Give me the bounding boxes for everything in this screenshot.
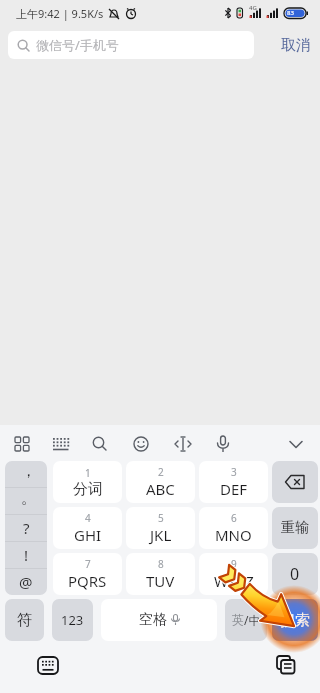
button[interactable]: 6 [199, 507, 268, 549]
button[interactable]: 7 [53, 553, 122, 595]
staticText: 8 [158, 557, 164, 571]
staticText: 2 [158, 465, 164, 479]
staticText: 6 [231, 511, 237, 525]
staticText: ABC [146, 479, 175, 499]
button[interactable]: 3 [199, 461, 268, 503]
staticText: TUV [146, 571, 175, 591]
staticText: 1 [85, 466, 91, 480]
button[interactable]: 8 [126, 553, 195, 595]
button[interactable]: 1 [53, 461, 122, 503]
staticText: 搜索 [280, 611, 310, 630]
button[interactable] [0, 425, 45, 461]
button[interactable]: 9 [199, 553, 268, 595]
staticText: GHI [74, 525, 102, 545]
button[interactable] [45, 425, 90, 461]
staticText: 4G [249, 4, 257, 12]
button[interactable]: 搜索 [272, 599, 318, 641]
button[interactable] [272, 461, 318, 503]
staticText: 4 [85, 511, 91, 525]
button[interactable] [182, 425, 228, 461]
button[interactable]: 微信号/手机号 [8, 31, 254, 59]
button[interactable]: 123 [52, 599, 93, 641]
button[interactable]: 空格 [101, 599, 217, 641]
button[interactable]: ， [5, 461, 47, 595]
button[interactable] [274, 425, 320, 461]
staticText: 分词 [73, 480, 103, 499]
staticText: 83 [287, 9, 294, 17]
button[interactable]: 4 [53, 507, 122, 549]
staticText: PQRS [68, 571, 107, 591]
staticText: 上午9:42 | 9.5K/s [16, 6, 104, 21]
staticText: ! [24, 545, 29, 565]
staticText: JKL [150, 525, 172, 545]
staticText: ? [23, 518, 30, 538]
staticText: 符 [17, 611, 32, 630]
staticText: 0 [290, 563, 300, 585]
staticText: @ [19, 572, 33, 592]
button[interactable]: 符 [5, 599, 44, 641]
button[interactable] [228, 425, 274, 461]
staticText: 取消 [281, 36, 311, 55]
staticText: ， [21, 462, 36, 481]
button[interactable]: 取消 [254, 26, 320, 64]
button[interactable]: 英 [225, 599, 267, 641]
button[interactable]: 5 [126, 507, 195, 549]
staticText: 123 [61, 611, 84, 629]
staticText: 7 [85, 557, 91, 571]
button[interactable] [136, 425, 182, 461]
staticText: 空格 [139, 611, 167, 629]
staticText: WXYZ [214, 571, 254, 591]
staticText: 。 [21, 489, 36, 508]
staticText: 英 [232, 612, 244, 627]
staticText: 9 [231, 557, 237, 571]
staticText: 3 [231, 465, 237, 479]
button[interactable]: 2 [126, 461, 195, 503]
button[interactable] [270, 650, 302, 680]
staticText: MNO [215, 525, 252, 545]
staticText: 微信号/手机号 [36, 36, 119, 54]
staticText: 5 [158, 511, 164, 525]
button[interactable] [32, 650, 64, 680]
button[interactable]: 重输 [272, 507, 318, 549]
button[interactable]: 0 [272, 553, 318, 595]
button[interactable] [90, 425, 136, 461]
staticText: DEF [220, 479, 248, 499]
staticText: /中 [244, 612, 261, 628]
staticText: 重输 [281, 519, 309, 537]
